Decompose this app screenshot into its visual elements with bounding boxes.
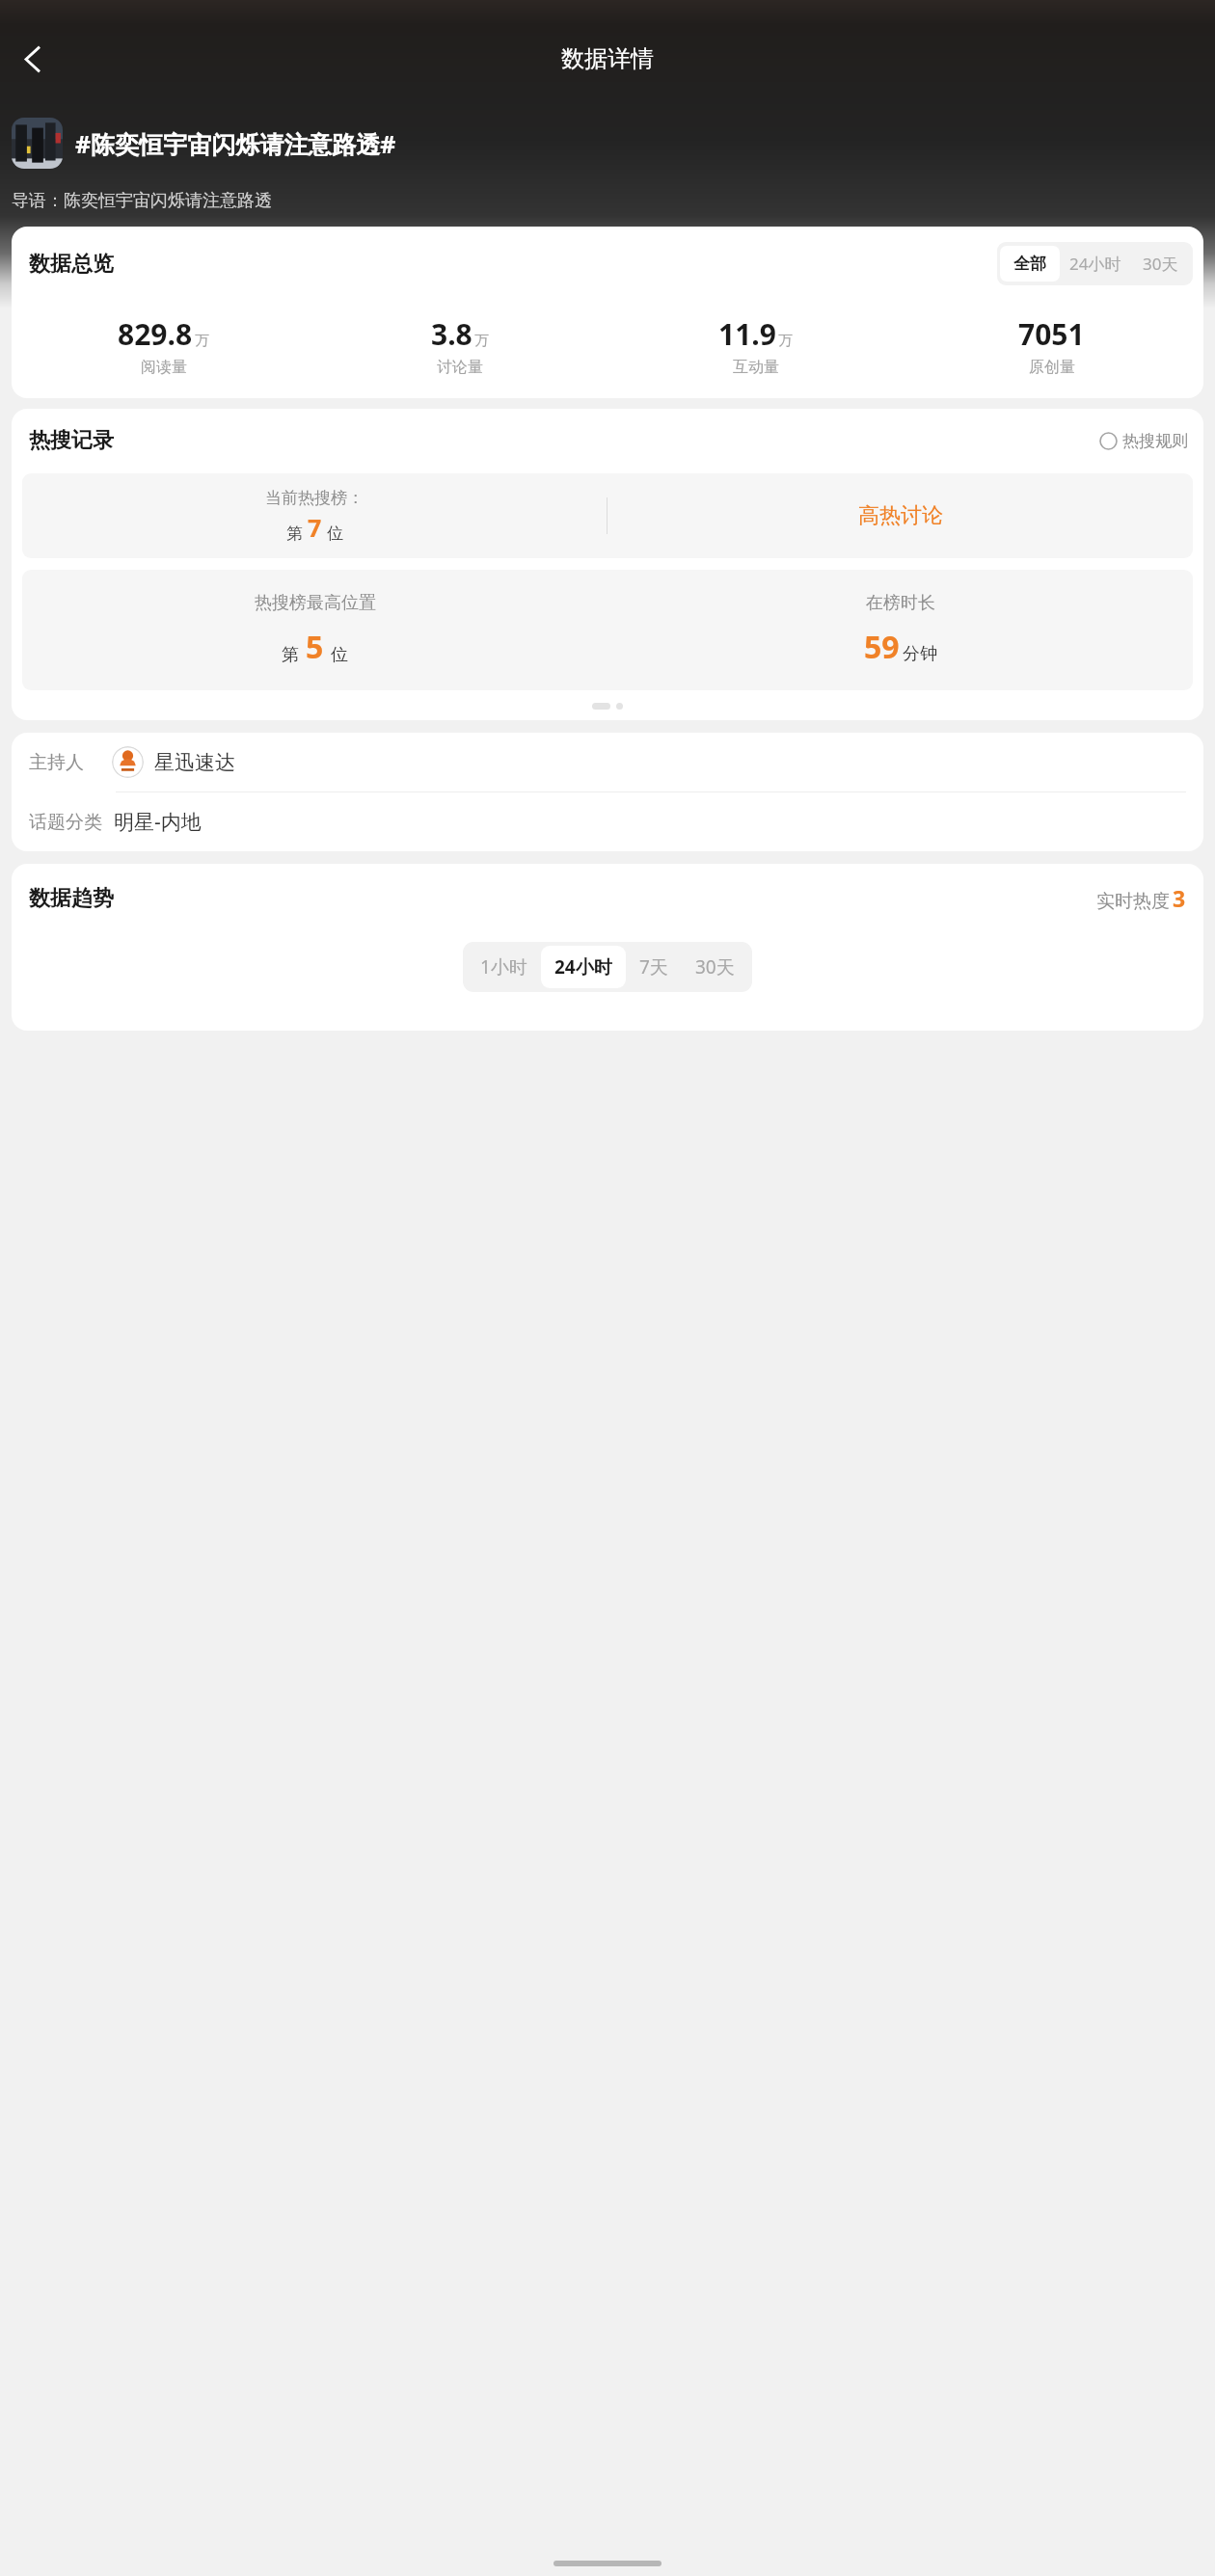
staticText: 讨论量 <box>437 358 483 377</box>
button[interactable]: 11.9 <box>607 314 904 377</box>
staticText: 第 <box>282 644 299 666</box>
staticText: 7051 <box>1018 314 1085 354</box>
button[interactable]: 当前热搜榜： <box>22 473 1193 558</box>
staticText: 热搜记录 <box>29 427 114 454</box>
staticText: 万 <box>195 332 209 350</box>
staticText: 高热讨论 <box>858 502 943 529</box>
staticText: 5 <box>306 626 324 668</box>
staticText: 59 <box>864 626 900 668</box>
staticText: 7天 <box>639 954 668 979</box>
staticText: #陈奕恒宇宙闪烁请注意路透# <box>75 127 396 160</box>
staticText: 主持人 <box>29 751 84 774</box>
staticText: 当前热搜榜： <box>265 488 364 508</box>
staticText: 导语：陈奕恒宇宙闪烁请注意路透 <box>12 190 272 212</box>
button[interactable]: 30天 <box>1131 245 1190 282</box>
staticText: 热搜榜最高位置 <box>255 592 376 614</box>
button[interactable]: 30天 <box>682 946 748 988</box>
staticText: 热搜规则 <box>1122 431 1188 451</box>
staticText: 互动量 <box>733 358 779 377</box>
staticText: 话题分类 <box>29 811 102 834</box>
staticText: 829.8 <box>118 314 193 354</box>
staticText: 数据详情 <box>561 44 654 73</box>
staticText: 全部 <box>1013 254 1046 274</box>
button[interactable]: Back <box>4 31 60 87</box>
button[interactable]: 热搜榜最高位置 <box>22 570 1193 690</box>
button[interactable]: 热搜规则 <box>1099 431 1188 451</box>
staticText: 3.8 <box>431 314 472 354</box>
button[interactable]: 7051 <box>904 314 1200 377</box>
staticText: 位 <box>327 523 343 544</box>
staticText: 24小时 <box>554 954 612 979</box>
button[interactable]: 7天 <box>626 946 682 988</box>
staticText: 分钟 <box>903 643 937 665</box>
button[interactable] <box>12 118 63 169</box>
staticText: 原创量 <box>1029 358 1075 377</box>
staticText: 明星-内地 <box>114 808 202 836</box>
button[interactable]: 24小时 <box>1060 245 1131 282</box>
staticText: 30天 <box>1143 253 1178 275</box>
button[interactable]: 829.8 <box>15 314 311 377</box>
button[interactable]: 全部 <box>1000 246 1060 282</box>
staticText: 万 <box>778 332 793 350</box>
staticText: 阅读量 <box>141 358 187 377</box>
staticText: 实时热度 <box>1096 890 1170 913</box>
button[interactable]: 实时热度 <box>1096 883 1186 913</box>
staticText: 在榜时长 <box>866 592 935 614</box>
staticText: 3 <box>1173 883 1186 913</box>
staticText: 11.9 <box>718 314 776 354</box>
staticText: 星迅速达 <box>154 750 235 775</box>
staticText: 万 <box>474 332 489 350</box>
button[interactable]: 话题分类 <box>12 792 1203 851</box>
staticText: 数据总览 <box>29 251 114 278</box>
staticText: 30天 <box>695 954 735 979</box>
staticText: 位 <box>331 644 348 666</box>
staticText: 7 <box>308 511 322 544</box>
button[interactable]: 3.8 <box>311 314 607 377</box>
staticText: 数据趋势 <box>29 885 114 912</box>
staticText: 24小时 <box>1069 253 1121 275</box>
button[interactable]: 主持人 <box>12 733 1203 792</box>
staticText: 1小时 <box>480 954 527 979</box>
button[interactable]: 1小时 <box>467 946 541 988</box>
button[interactable]: 24小时 <box>541 946 626 988</box>
staticText: 第 <box>286 523 303 544</box>
